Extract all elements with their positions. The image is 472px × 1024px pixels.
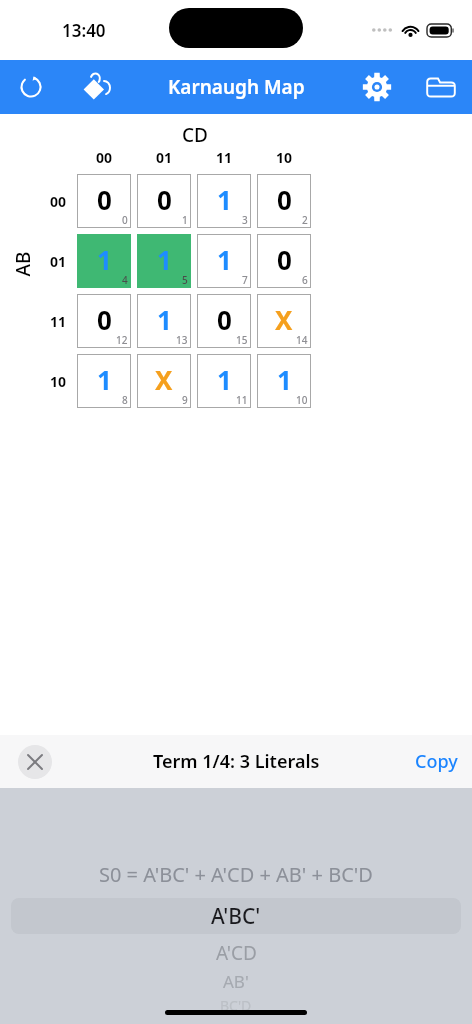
staticText: 13	[176, 333, 188, 347]
button[interactable]: Settings	[344, 60, 410, 114]
button[interactable]: 0	[257, 234, 311, 288]
staticText: 7	[242, 273, 248, 287]
staticText: 0	[277, 182, 292, 217]
button[interactable]: 0	[257, 174, 311, 228]
staticText: 5	[182, 273, 188, 287]
button[interactable]: 0	[77, 294, 131, 348]
staticText: 10	[276, 148, 293, 167]
staticText: Copy	[415, 749, 458, 774]
button[interactable]: Reset	[0, 60, 62, 114]
button[interactable]: 1	[197, 354, 251, 408]
staticText: 12	[116, 333, 128, 347]
staticText: 6	[302, 273, 308, 287]
staticText: 1	[157, 302, 172, 337]
staticText: 1	[157, 242, 172, 277]
staticText: 1	[97, 362, 112, 397]
staticText: 01	[156, 148, 173, 167]
staticText: 0	[277, 242, 292, 277]
button[interactable]: A'CD	[216, 940, 257, 966]
staticText: S0 = A'BC' + A'CD + AB' + BC'D	[99, 861, 373, 888]
staticText: 0	[157, 182, 172, 217]
staticText: 1	[182, 213, 188, 227]
staticText: 2	[302, 213, 308, 227]
staticText: 0	[217, 302, 232, 337]
staticText: Term 1/4: 3 Literals	[153, 749, 320, 774]
button[interactable]: 1	[197, 174, 251, 228]
staticText: 11	[236, 393, 248, 407]
button[interactable]: 1	[77, 354, 131, 408]
button[interactable]: BC'D	[220, 996, 252, 1015]
button[interactable]: 1	[197, 234, 251, 288]
staticText: 0	[122, 213, 128, 227]
staticText: 14	[296, 333, 308, 347]
staticText: 1	[277, 362, 292, 397]
staticText: X	[155, 362, 173, 397]
button[interactable]: Close	[18, 745, 52, 779]
staticText: 00	[50, 192, 67, 211]
staticText: 1	[217, 362, 232, 397]
staticText: 8	[122, 393, 128, 407]
staticText: X	[275, 302, 293, 337]
button[interactable]: Fill	[62, 60, 128, 114]
button[interactable]: 1	[137, 234, 191, 288]
button[interactable]: Copy	[415, 735, 458, 788]
button[interactable]: 1	[137, 294, 191, 348]
staticText: A'BC'	[211, 902, 261, 931]
staticText: 0	[97, 182, 112, 217]
staticText: 1	[217, 182, 232, 217]
staticText: 00	[96, 148, 113, 167]
staticText: 1	[217, 242, 232, 277]
staticText: 3	[242, 213, 248, 227]
button[interactable]: A'BC'	[11, 898, 461, 934]
button[interactable]: X	[257, 294, 311, 348]
staticText: AB	[9, 251, 35, 276]
staticText: 13:40	[62, 19, 106, 42]
staticText: 11	[50, 312, 67, 331]
staticText: 10	[296, 393, 308, 407]
staticText: CD	[182, 122, 208, 148]
staticText: 10	[50, 372, 67, 391]
button[interactable]: 0	[137, 174, 191, 228]
button[interactable]: 0	[77, 174, 131, 228]
staticText: 4	[122, 273, 128, 287]
button[interactable]: Files	[410, 60, 472, 114]
staticText: 9	[182, 393, 188, 407]
button[interactable]: AB'	[223, 970, 249, 993]
staticText: Karnaugh Map	[168, 74, 305, 100]
button[interactable]: X	[137, 354, 191, 408]
button[interactable]: 1	[257, 354, 311, 408]
staticText: 0	[97, 302, 112, 337]
button[interactable]: 1	[77, 234, 131, 288]
staticText: 01	[50, 252, 67, 271]
staticText: 11	[216, 148, 233, 167]
button[interactable]: 0	[197, 294, 251, 348]
staticText: 1	[97, 242, 112, 277]
staticText: 15	[236, 333, 248, 347]
